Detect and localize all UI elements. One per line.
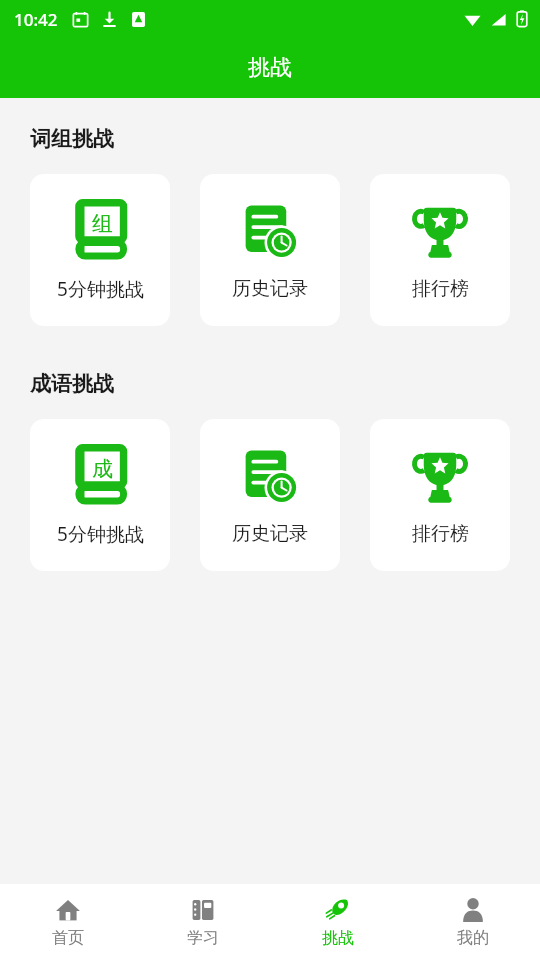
staticText: 组 <box>92 211 113 237</box>
button[interactable]: 历史记录 <box>200 419 340 571</box>
staticText: 成语挑战 <box>30 371 114 397</box>
staticText: 学习 <box>187 928 219 948</box>
staticText: 排行榜 <box>412 277 469 301</box>
button[interactable]: 我的 <box>405 884 540 960</box>
button[interactable]: 学习 <box>135 884 270 960</box>
button[interactable]: 排行榜 <box>370 419 510 571</box>
button[interactable]: 历史记录 <box>200 174 340 326</box>
button[interactable]: 组 <box>30 174 170 326</box>
staticText: 历史记录 <box>232 277 308 301</box>
staticText: 我的 <box>457 928 489 948</box>
staticText: 挑战 <box>322 928 354 948</box>
staticText: 成 <box>92 456 113 482</box>
staticText: 5分钟挑战 <box>57 521 144 547</box>
staticText: 历史记录 <box>232 522 308 546</box>
staticText: 词组挑战 <box>30 126 114 152</box>
button[interactable]: 首页 <box>0 884 135 960</box>
staticText: 首页 <box>52 928 84 948</box>
staticText: 10:42 <box>14 8 58 31</box>
staticText: 5分钟挑战 <box>57 276 144 302</box>
staticText: 挑战 <box>248 54 292 82</box>
button[interactable]: 排行榜 <box>370 174 510 326</box>
staticText: 排行榜 <box>412 522 469 546</box>
button[interactable]: 成 <box>30 419 170 571</box>
button[interactable]: 挑战 <box>270 884 405 960</box>
